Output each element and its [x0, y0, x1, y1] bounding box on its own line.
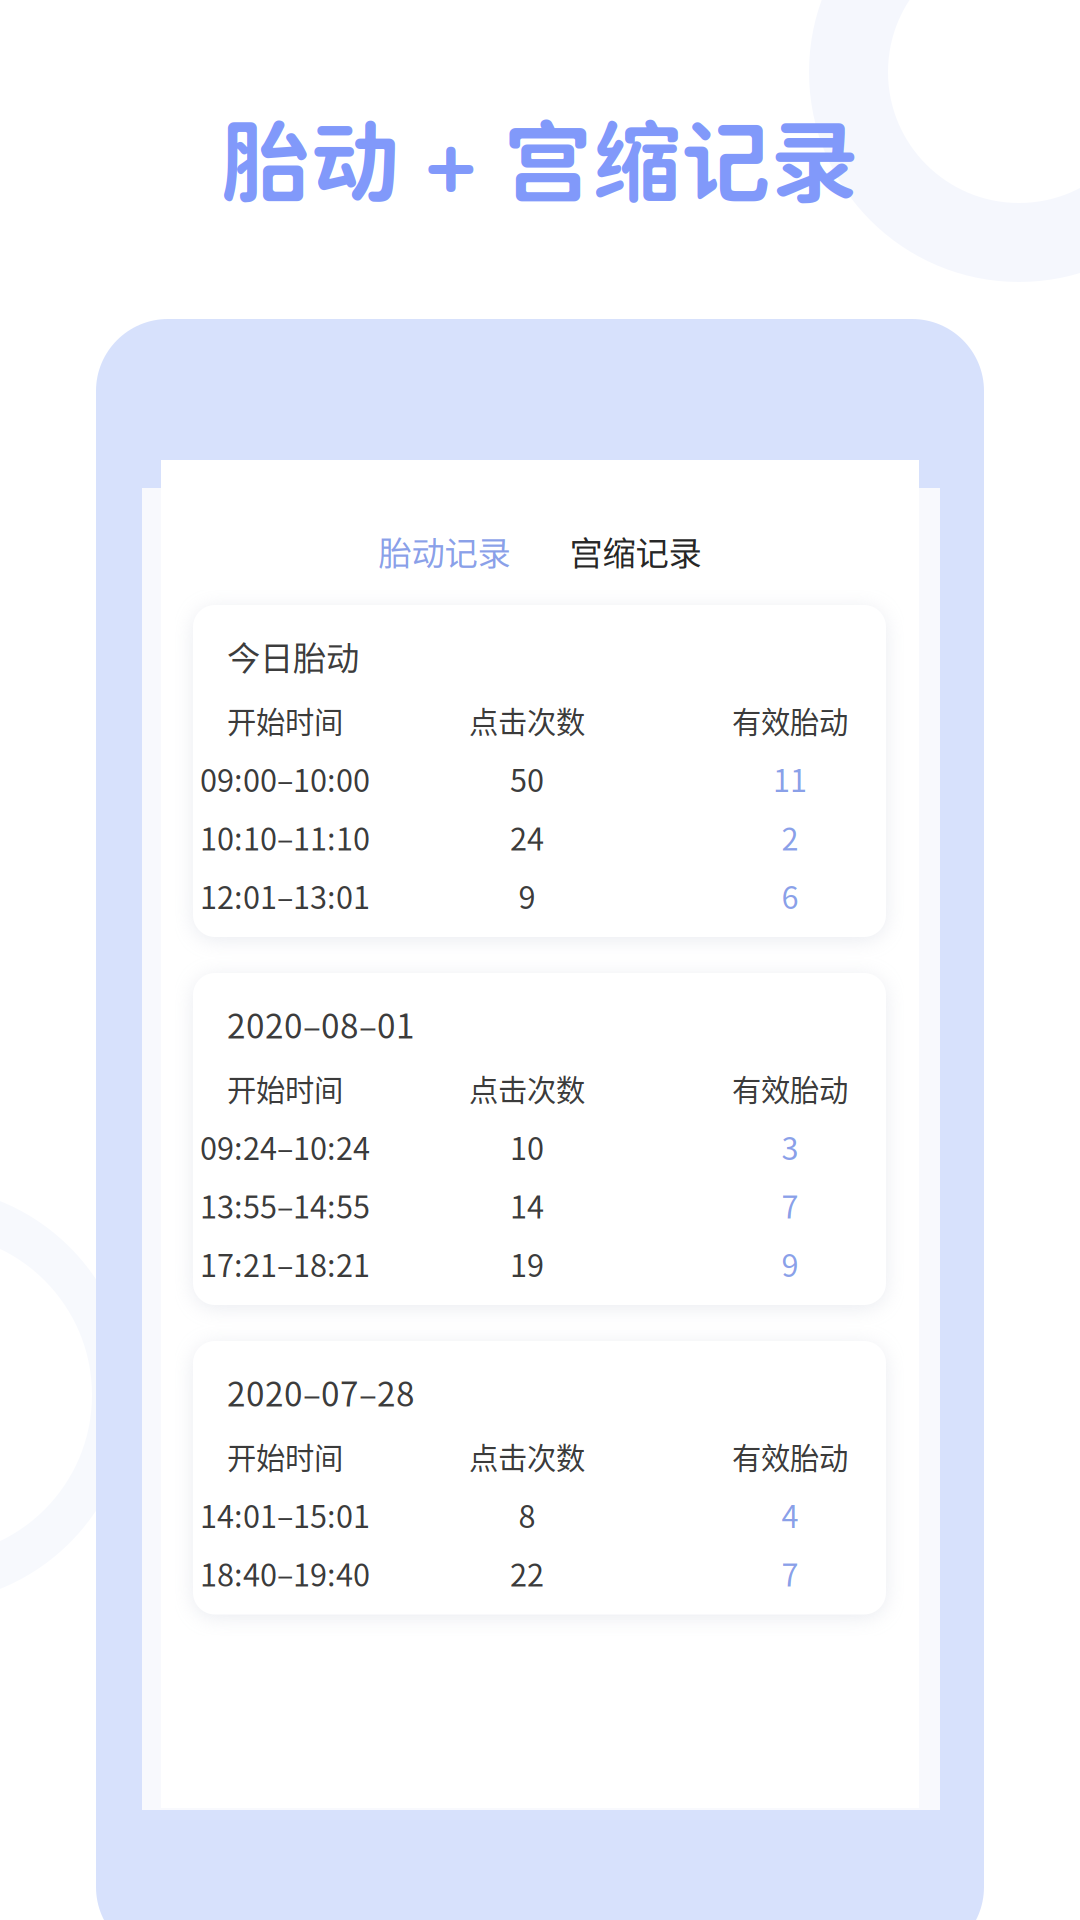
- staticText: 09:00–10:00: [200, 756, 370, 801]
- staticText: 2: [781, 815, 798, 859]
- staticText: 6: [781, 873, 798, 918]
- staticText: 8: [518, 1492, 535, 1537]
- staticText: 17:21–18:21: [200, 1241, 370, 1286]
- staticText: 有效胎动: [732, 699, 848, 741]
- staticText: 14:01–15:01: [200, 1492, 370, 1537]
- staticText: 4: [781, 1492, 798, 1537]
- staticText: 点击次数: [469, 1067, 585, 1109]
- staticText: 有效胎动: [732, 1067, 848, 1109]
- staticText: 3: [781, 1124, 798, 1169]
- staticText: 18:40–19:40: [200, 1551, 370, 1595]
- staticText: 开始时间: [227, 699, 343, 741]
- staticText: 14: [510, 1183, 544, 1227]
- staticText: 2020–08–01: [227, 1000, 415, 1048]
- staticText: 9: [518, 873, 535, 918]
- button[interactable]: 宫缩记录: [555, 525, 715, 577]
- staticText: 10:10–11:10: [200, 815, 370, 859]
- staticText: 开始时间: [227, 1067, 343, 1109]
- staticText: 7: [781, 1183, 798, 1227]
- staticText: 19: [510, 1241, 544, 1286]
- staticText: 7: [781, 1551, 798, 1595]
- staticText: 9: [781, 1241, 798, 1286]
- staticText: 有效胎动: [732, 1435, 848, 1477]
- staticText: 2020–07–28: [227, 1368, 415, 1416]
- staticText: 今日胎动: [227, 632, 359, 680]
- staticText: 22: [510, 1551, 544, 1595]
- staticText: 点击次数: [469, 699, 585, 741]
- button[interactable]: 胎动记录: [364, 525, 524, 577]
- staticText: 09:24–10:24: [200, 1124, 370, 1169]
- staticText: 24: [510, 815, 544, 859]
- staticText: 胎动 + 宫缩记录: [221, 108, 859, 214]
- staticText: 50: [510, 756, 544, 801]
- staticText: 13:55–14:55: [200, 1183, 370, 1227]
- staticText: 开始时间: [227, 1435, 343, 1477]
- staticText: 点击次数: [469, 1435, 585, 1477]
- staticText: 10: [510, 1124, 544, 1169]
- staticText: 12:01–13:01: [200, 873, 370, 918]
- staticText: 11: [773, 756, 807, 801]
- staticText: 宫缩记录: [569, 527, 701, 575]
- staticText: 胎动记录: [378, 527, 510, 575]
